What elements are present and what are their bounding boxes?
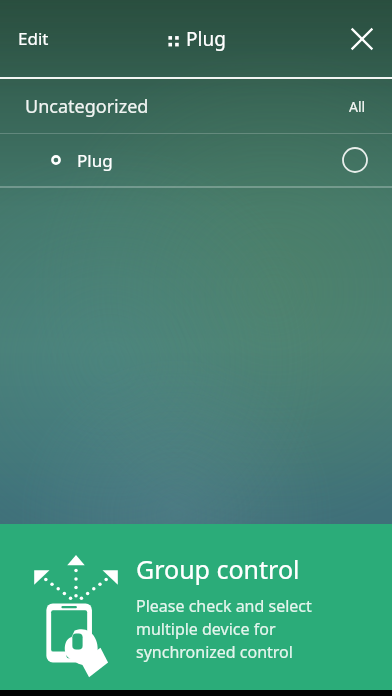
- button[interactable]: Select Plug: [336, 141, 374, 179]
- button[interactable]: Uncategorized: [0, 79, 392, 133]
- staticText: Please check and select multiple device …: [136, 595, 312, 663]
- staticText: Plug: [186, 26, 226, 52]
- staticText: Edit: [18, 27, 49, 50]
- staticText: All: [349, 97, 366, 116]
- button[interactable]: Group control: [0, 524, 392, 690]
- button[interactable]: Plug: [0, 134, 392, 186]
- button[interactable]: Edit: [4, 17, 63, 60]
- button[interactable]: Close: [338, 15, 386, 63]
- staticText: Uncategorized: [25, 94, 149, 119]
- staticText: Group control: [136, 552, 300, 586]
- staticText: Plug: [77, 149, 113, 172]
